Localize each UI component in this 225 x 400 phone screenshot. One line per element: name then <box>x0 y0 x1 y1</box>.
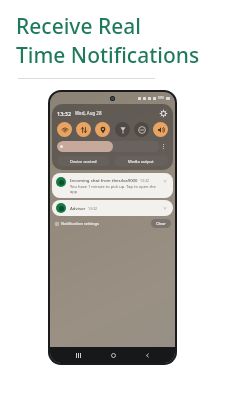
staticText: Incoming chat from thesilva9000 <box>70 177 138 183</box>
staticText: Clear <box>156 221 166 226</box>
button[interactable]: Expand <box>161 204 169 212</box>
staticText: 13:32 <box>88 206 97 211</box>
button[interactable]: Flashlight <box>115 122 130 137</box>
button[interactable]: Incoming chat from thesilva9000 <box>52 173 173 198</box>
button[interactable]: Advisor <box>52 200 173 216</box>
staticText: Time Notifications <box>16 41 200 70</box>
staticText: 13:32 <box>57 110 72 117</box>
button[interactable]: Media output <box>114 156 168 166</box>
button[interactable]: Notification settings <box>54 220 100 227</box>
button[interactable]: Mobile data <box>76 122 91 137</box>
button[interactable]: Device control <box>57 156 110 166</box>
button[interactable]: More options <box>159 141 168 152</box>
staticText: 13:32 <box>140 178 149 183</box>
button[interactable]: Sound <box>153 122 168 137</box>
staticText: Wed, Aug 28 <box>75 110 102 116</box>
staticText: Device control <box>70 159 97 164</box>
staticText: You have 1 minute to pick up. Tap to ope… <box>70 184 161 194</box>
button[interactable]: Home <box>106 348 120 362</box>
button[interactable]: Expand <box>161 177 169 185</box>
button[interactable]: Do not disturb <box>134 122 149 137</box>
staticText: 59% <box>158 96 164 100</box>
button[interactable]: Recents <box>71 348 85 362</box>
staticText: Advisor <box>70 205 86 211</box>
staticText: Notification settings <box>61 221 99 226</box>
button[interactable]: Wi-Fi <box>57 122 72 137</box>
button[interactable]: Back <box>140 348 154 362</box>
button[interactable]: Brightness <box>57 141 159 152</box>
button[interactable]: Location <box>95 122 110 137</box>
staticText: Media output <box>128 159 154 164</box>
button[interactable]: Clear <box>151 219 171 228</box>
button[interactable]: Settings <box>158 108 168 118</box>
staticText: Receive Real <box>16 12 141 41</box>
